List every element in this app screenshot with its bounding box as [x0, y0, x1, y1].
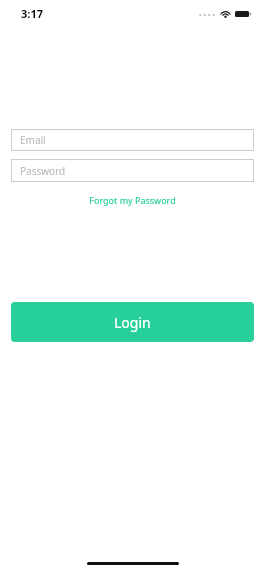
- staticText: 3:17: [21, 6, 43, 21]
- button[interactable]: Email: [11, 129, 254, 151]
- button[interactable]: Password: [11, 159, 254, 182]
- staticText: Login: [114, 313, 151, 332]
- staticText: Password: [20, 164, 66, 178]
- button[interactable]: Login: [11, 302, 254, 342]
- staticText: Email: [20, 133, 46, 147]
- button[interactable]: Forgot my Password: [83, 192, 182, 208]
